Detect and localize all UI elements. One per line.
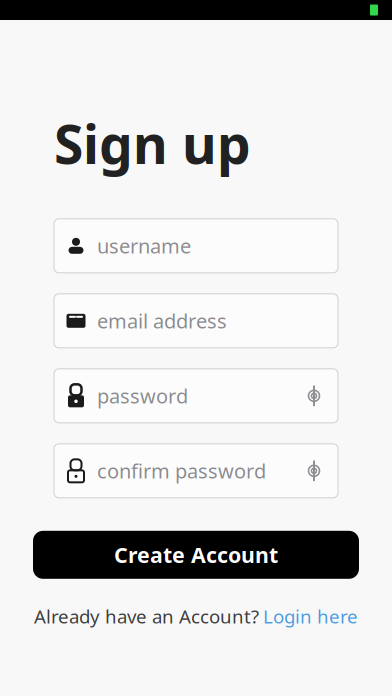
staticText: password xyxy=(97,382,188,409)
button[interactable]: username xyxy=(54,219,338,273)
button[interactable]: email address xyxy=(54,294,338,348)
staticText: email address xyxy=(97,307,227,334)
staticText: Already have an Account? xyxy=(34,604,259,629)
button[interactable]: confirm password xyxy=(54,444,338,498)
staticText: Create Account xyxy=(114,541,278,569)
staticText: Sign up xyxy=(54,108,251,179)
button[interactable]: password xyxy=(54,369,338,423)
staticText: confirm password xyxy=(97,457,266,484)
staticText: username xyxy=(97,232,191,259)
button[interactable]: Already have an Account? xyxy=(34,604,358,629)
staticText: Login here xyxy=(263,604,358,629)
button[interactable]: Create Account xyxy=(33,531,359,579)
